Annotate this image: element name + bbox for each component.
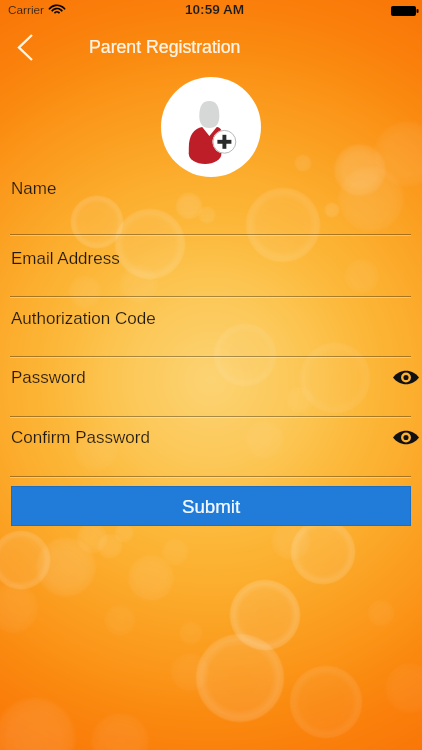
- staticText: Submit: [182, 496, 241, 517]
- staticText: Authorization Code: [11, 309, 156, 328]
- staticText: Password: [11, 368, 86, 387]
- staticText: Email Address: [11, 249, 120, 268]
- staticText: Parent Registration: [89, 37, 241, 57]
- staticText: Confirm Password: [11, 428, 150, 447]
- button[interactable]: Authorization Code: [0, 296, 422, 356]
- staticText: 10:59 AM: [185, 2, 245, 17]
- button[interactable]: Email Address: [0, 234, 422, 295]
- button[interactable]: Show password: [390, 422, 421, 452]
- staticText: Name: [11, 179, 57, 198]
- button[interactable]: Submit: [12, 487, 410, 525]
- button[interactable]: Password: [0, 357, 422, 417]
- button[interactable]: Name: [0, 173, 422, 234]
- staticText: Carrier: [8, 3, 45, 16]
- button[interactable]: Confirm Password: [0, 417, 422, 477]
- button[interactable]: Show password: [390, 362, 421, 392]
- button[interactable]: Back: [5, 27, 45, 67]
- button[interactable]: Add profile photo: [161, 77, 261, 177]
